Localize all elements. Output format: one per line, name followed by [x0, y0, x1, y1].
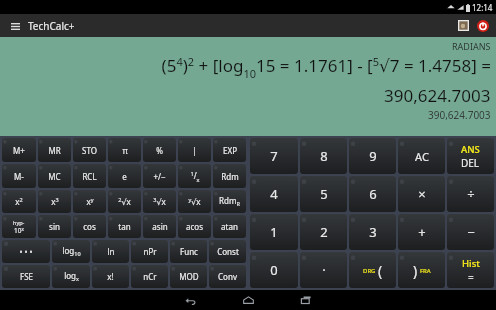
button[interactable]: M-: [2, 164, 36, 188]
staticText: 2: [320, 223, 328, 241]
button[interactable]: 4: [250, 176, 298, 212]
button[interactable]: Menu: [8, 19, 22, 33]
button[interactable]: nPr: [131, 240, 168, 263]
button[interactable]: Screenshot: [457, 19, 470, 32]
button[interactable]: MR: [38, 138, 71, 162]
staticText: TechCalc+: [28, 19, 75, 33]
staticText: ·: [322, 261, 326, 279]
button[interactable]: Rdm: [213, 164, 246, 188]
button[interactable]: x3: [38, 190, 71, 213]
button[interactable]: RCL: [73, 164, 106, 188]
staticText: e: [122, 171, 127, 182]
button[interactable]: Home: [231, 290, 265, 310]
button[interactable]: Divide: [447, 176, 494, 212]
button[interactable]: cos: [73, 215, 106, 238]
button[interactable]: %: [143, 138, 176, 162]
staticText: hyp-: [13, 219, 25, 226]
staticText: MR: [48, 145, 61, 156]
button[interactable]: 3√x: [143, 190, 176, 213]
staticText: 0: [270, 261, 278, 279]
button[interactable]: Recent apps: [289, 290, 323, 310]
button[interactable]: 2√x: [108, 190, 141, 213]
staticText: MOD: [179, 271, 199, 282]
staticText: Rdm: [221, 171, 239, 182]
button[interactable]: RdmR: [213, 190, 246, 213]
staticText: 4: [270, 185, 278, 203]
button[interactable]: Hist =: [447, 252, 494, 288]
staticText: ln: [107, 246, 115, 257]
button[interactable]: EXP: [213, 138, 246, 162]
button[interactable]: STO: [73, 138, 106, 162]
button[interactable]: sin: [38, 215, 71, 238]
button[interactable]: 9: [349, 138, 396, 174]
staticText: nPr: [143, 246, 157, 257]
button[interactable]: MC: [38, 164, 71, 188]
staticText: 390,624.7003: [428, 108, 491, 122]
button[interactable]: Conv: [209, 265, 246, 288]
button[interactable]: nCr: [131, 265, 168, 288]
button[interactable]: M+: [2, 138, 36, 162]
button[interactable]: asin: [143, 215, 176, 238]
button[interactable]: 7: [250, 138, 298, 174]
staticText: ×: [418, 185, 426, 203]
button[interactable]: |: [178, 138, 211, 162]
button[interactable]: ln: [92, 240, 129, 263]
staticText: (: [378, 261, 383, 280]
button[interactable]: hyp 10^x: [2, 215, 36, 238]
staticText: RADIANS: [452, 40, 491, 52]
button[interactable]: y√x: [178, 190, 211, 213]
button[interactable]: xy: [73, 190, 106, 213]
button[interactable]: 6: [349, 176, 396, 212]
staticText: =: [468, 270, 474, 284]
button[interactable]: Plus: [398, 214, 445, 250]
button[interactable]: 3: [349, 214, 396, 250]
staticText: 9: [369, 147, 377, 165]
button[interactable]: FSE: [2, 265, 50, 288]
button[interactable]: logx: [52, 265, 90, 288]
staticText: |: [192, 145, 197, 156]
button[interactable]: Const: [209, 240, 246, 263]
button[interactable]: More: [2, 240, 50, 263]
button[interactable]: Func: [170, 240, 207, 263]
button[interactable]: e: [108, 164, 141, 188]
button[interactable]: MOD: [170, 265, 207, 288]
button[interactable]: +/−: [143, 164, 176, 188]
staticText: nCr: [143, 271, 157, 282]
button[interactable]: x!: [92, 265, 129, 288]
button[interactable]: log10: [52, 240, 90, 263]
button[interactable]: 1: [250, 214, 298, 250]
button[interactable]: acos: [178, 215, 211, 238]
button[interactable]: 1/x: [178, 164, 211, 188]
button[interactable]: Decimal point: [300, 252, 347, 288]
button[interactable]: AC: [398, 138, 445, 174]
button[interactable]: 0: [250, 252, 298, 288]
button[interactable]: Minus: [447, 214, 494, 250]
staticText: RdmR: [219, 195, 240, 208]
button[interactable]: x2: [2, 190, 36, 213]
button[interactable]: 2: [300, 214, 347, 250]
staticText: ): [413, 261, 418, 280]
button[interactable]: atan: [213, 215, 246, 238]
button[interactable]: FRA ): [398, 252, 445, 288]
staticText: AC: [415, 149, 429, 164]
staticText: FSE: [20, 271, 33, 282]
button[interactable]: 5: [300, 176, 347, 212]
button[interactable]: DRG (: [349, 252, 396, 288]
staticText: Const: [217, 246, 239, 257]
button[interactable]: 8: [300, 138, 347, 174]
button[interactable]: tan: [108, 215, 141, 238]
staticText: acos: [186, 221, 203, 232]
staticText: xy: [86, 196, 94, 207]
staticText: ÷: [467, 185, 475, 203]
staticText: 7: [270, 147, 278, 165]
button[interactable]: π: [108, 138, 141, 162]
staticText: π: [122, 145, 128, 156]
button[interactable]: ANS DEL: [447, 138, 494, 174]
staticText: cos: [83, 221, 96, 232]
staticText: 10x: [14, 226, 24, 235]
button[interactable]: Back: [173, 290, 207, 310]
staticText: MC: [48, 171, 61, 182]
button[interactable]: Multiply: [398, 176, 445, 212]
staticText: 1/x: [190, 170, 200, 183]
button[interactable]: Power: [476, 19, 490, 33]
